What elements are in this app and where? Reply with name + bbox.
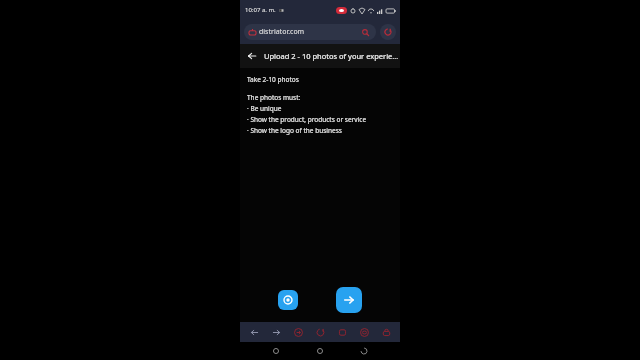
button[interactable]: Tabs [334, 324, 350, 340]
staticText: · Be unique [247, 104, 282, 113]
button[interactable]: Back [356, 343, 372, 359]
button[interactable]: Next [336, 287, 362, 313]
button[interactable]: Back [246, 324, 262, 340]
button[interactable]: Reload [312, 324, 328, 340]
button[interactable]: Back [240, 44, 264, 68]
staticText: Take 2-10 photos [247, 75, 299, 84]
button[interactable]: Shield [380, 24, 396, 40]
staticText: Upload 2 - 10 photos of your experience [264, 51, 400, 61]
staticText: · Show the logo of the business [247, 126, 342, 135]
staticText: distriator.com [259, 27, 360, 37]
button[interactable]: Menu [378, 324, 394, 340]
button[interactable]: distriator.com [244, 24, 376, 40]
button[interactable]: Search [360, 27, 371, 38]
button[interactable]: Share [290, 324, 306, 340]
staticText: The photos must: [247, 93, 301, 102]
button[interactable]: Recents [268, 343, 284, 359]
button[interactable]: Privacy [356, 324, 372, 340]
button[interactable]: Home [312, 343, 328, 359]
staticText: · Show the product, products or service … [247, 115, 395, 124]
button[interactable]: Take photo [278, 290, 298, 310]
button[interactable]: Forward [268, 324, 284, 340]
staticText: 10:07 a. m. [245, 6, 276, 14]
